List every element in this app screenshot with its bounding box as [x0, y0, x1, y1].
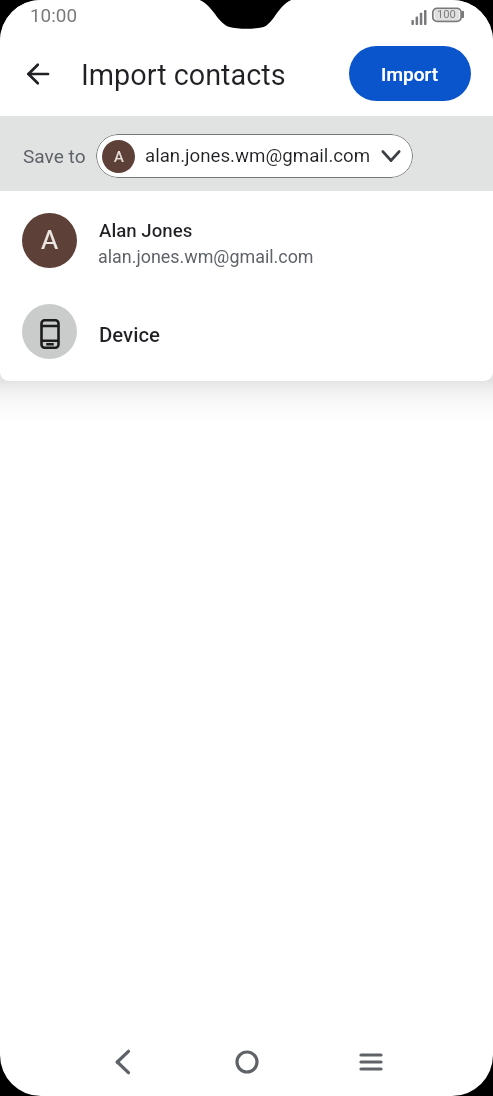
staticText: alan.jones.wm@gmail.com [145, 145, 371, 167]
staticText: alan.jones.wm@gmail.com [98, 246, 314, 267]
button[interactable]: Import [349, 46, 471, 101]
staticText: Device [99, 323, 160, 347]
button[interactable]: Home [216, 1031, 277, 1092]
button[interactable]: Back [13, 49, 61, 97]
button[interactable]: Device [0, 283, 493, 381]
staticText: 10:00 [30, 4, 78, 26]
staticText: Import contacts [81, 58, 286, 92]
staticText: Import [381, 63, 439, 85]
staticText: 100 [437, 8, 456, 21]
button[interactable]: Back [92, 1031, 153, 1092]
staticText: Alan Jones [99, 220, 193, 242]
staticText: A [114, 148, 124, 166]
staticText: Save to [23, 145, 86, 167]
staticText: A [41, 225, 59, 256]
button[interactable]: A [0, 191, 493, 283]
button[interactable]: Recent apps [340, 1031, 401, 1092]
button[interactable]: A [96, 134, 413, 178]
